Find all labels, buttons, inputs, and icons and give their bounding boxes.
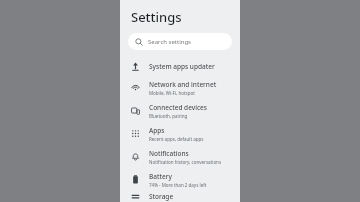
staticText: Search settings (148, 38, 191, 46)
staticText: Notification history, conversations (149, 159, 222, 165)
staticText: Connected devices (149, 103, 208, 112)
staticText: Bluetooth, pairing (149, 113, 188, 119)
staticText: Storage (149, 192, 174, 201)
button[interactable]: Network and internet (120, 76, 240, 99)
button[interactable]: Search settings (128, 33, 232, 50)
button[interactable]: Battery (120, 168, 240, 191)
staticText: Mobile, Wi-Fi, hotspot (149, 90, 195, 96)
button[interactable]: Storage (120, 191, 240, 202)
staticText: Recent apps, default apps (149, 136, 204, 142)
button[interactable]: Notifications (120, 145, 240, 168)
button[interactable]: Apps (120, 122, 240, 145)
staticText: Network and internet (149, 80, 217, 89)
staticText: Notifications (149, 149, 189, 158)
button[interactable]: System apps updater (120, 56, 240, 76)
button[interactable]: Connected devices (120, 99, 240, 122)
staticText: Apps (149, 126, 165, 135)
staticText: Settings (131, 8, 182, 26)
staticText: System apps updater (149, 62, 215, 71)
staticText: Battery (149, 172, 172, 181)
staticText: 74% - More than 2 days left (149, 182, 207, 188)
